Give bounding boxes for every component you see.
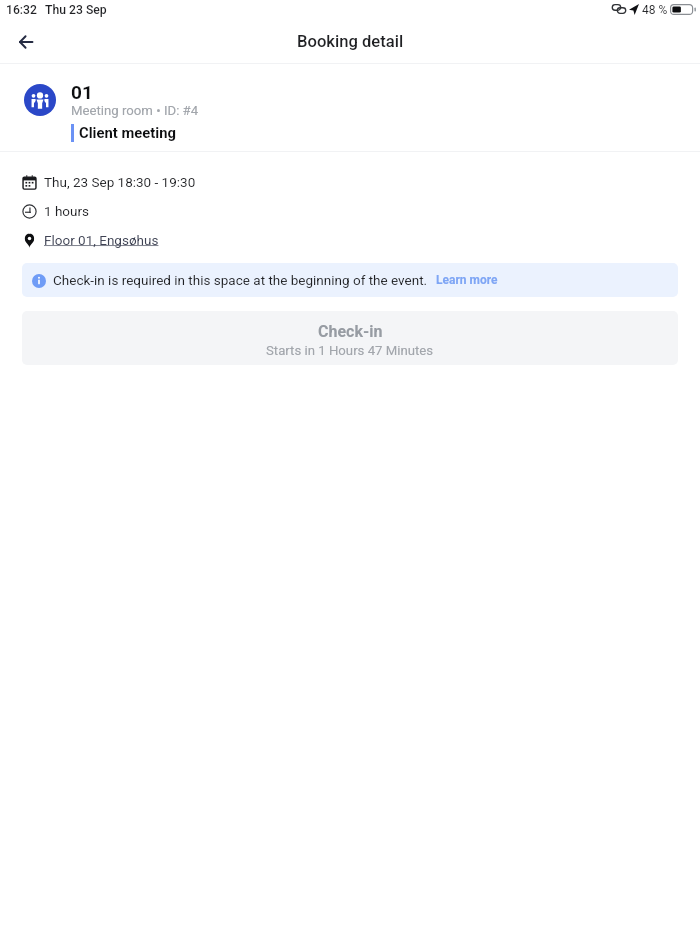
staticText: Client meeting (79, 124, 176, 141)
staticText: Meeting room • ID: #4 (71, 103, 199, 118)
button[interactable]: Floor 01, Engsøhus (44, 232, 159, 248)
staticText: Learn more (436, 273, 498, 287)
staticText: Thu 23 Sep (45, 3, 107, 17)
button[interactable]: Learn more (436, 273, 498, 287)
staticText: Thu, 23 Sep 18:30 - 19:30 (44, 174, 196, 190)
staticText: Starts in 1 Hours 47 Minutes (266, 343, 434, 358)
staticText: 1 hours (44, 203, 90, 219)
button[interactable]: Back (8, 24, 44, 60)
staticText: Check-in (318, 322, 383, 341)
staticText: Booking detail (297, 32, 404, 51)
staticText: 48 % (642, 3, 668, 17)
staticText: Floor 01, Engsøhus (44, 232, 159, 248)
staticText: 01 (71, 81, 93, 103)
staticText: Check-in is required in this space at th… (53, 272, 428, 288)
staticText: 16:32 (6, 3, 37, 17)
button[interactable]: Check-in (22, 311, 678, 365)
